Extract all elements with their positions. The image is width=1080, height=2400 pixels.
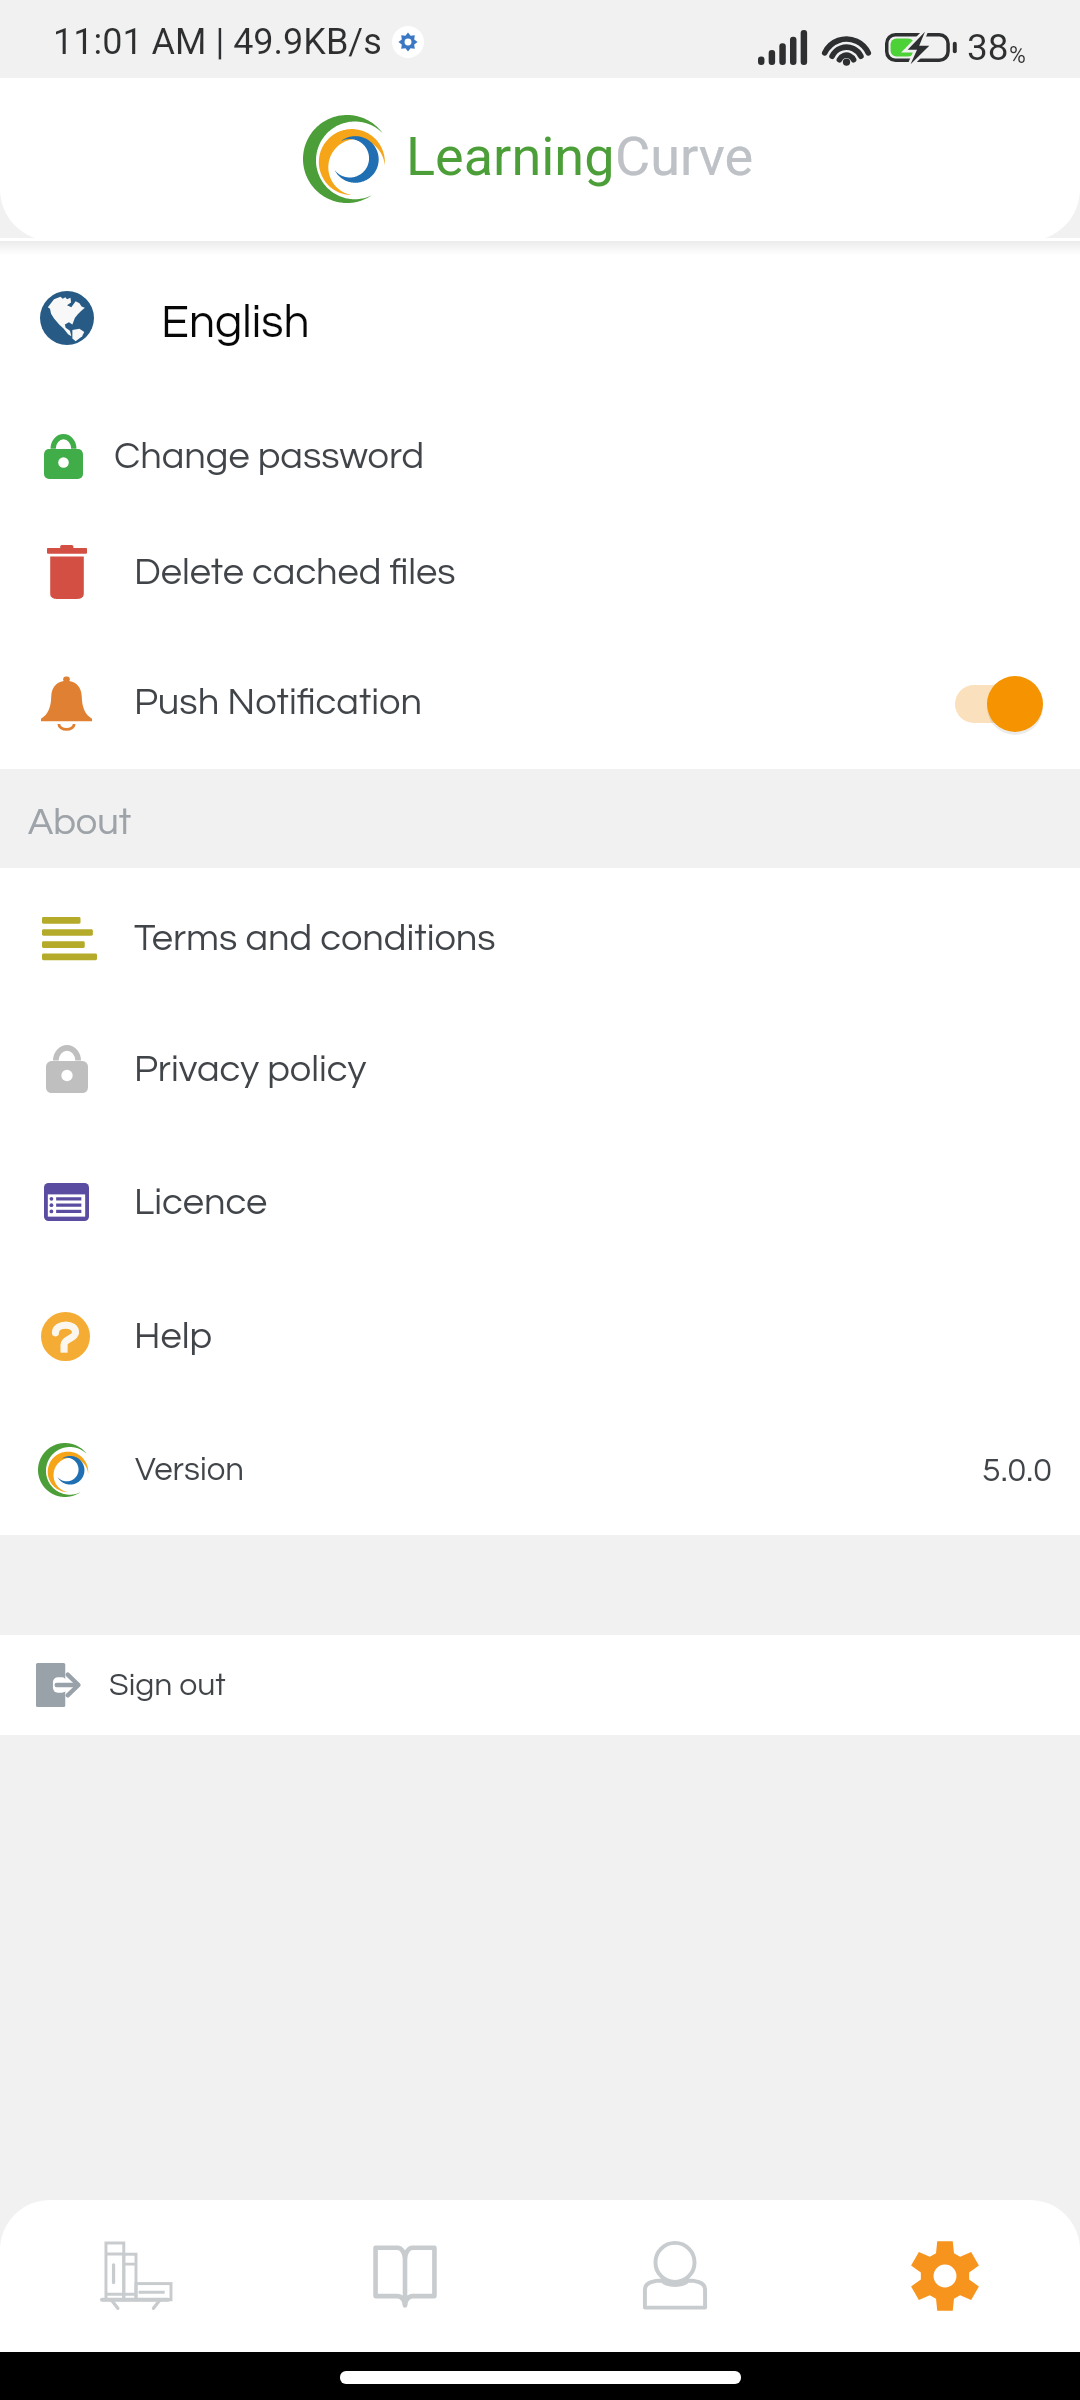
staticText: Help [134,1317,213,1356]
button[interactable]: Terms and conditions [0,882,1080,994]
staticText: Change password [114,437,425,476]
button[interactable]: Privacy policy [0,1013,1080,1125]
button[interactable]: Licence [0,1146,1080,1258]
button[interactable]: Change password [0,400,1080,512]
button[interactable]: Version [0,1414,1080,1526]
staticText: Version [135,1453,244,1487]
staticText: Curve [615,125,754,188]
button[interactable]: Help [0,1280,1080,1392]
button[interactable]: Profile [540,2200,810,2352]
staticText: Sign out [109,1669,226,1702]
staticText: Terms and conditions [134,919,496,958]
staticText: Delete cached files [134,553,456,592]
staticText: 5.0.0 [982,1453,1052,1488]
staticText: Licence [134,1183,268,1222]
button[interactable]: Settings [810,2200,1080,2352]
staticText: % [1009,42,1026,69]
staticText: English [161,299,310,346]
staticText: 38 [967,26,1009,69]
button[interactable]: Library [0,2200,270,2352]
staticText: About [28,803,132,842]
button[interactable]: English [0,255,1080,380]
button[interactable]: Delete cached files [0,516,1080,628]
button[interactable]: Push notification toggle [955,676,1044,733]
staticText: 11:01 AM | 49.9KB/s [53,21,382,63]
staticText: Push Notification [134,683,423,722]
button[interactable]: Sign out [0,1635,1080,1735]
button[interactable]: Read [270,2200,540,2352]
button[interactable]: Push Notification [0,646,1080,758]
staticText: Privacy policy [134,1050,367,1089]
staticText: Learning [406,125,615,188]
